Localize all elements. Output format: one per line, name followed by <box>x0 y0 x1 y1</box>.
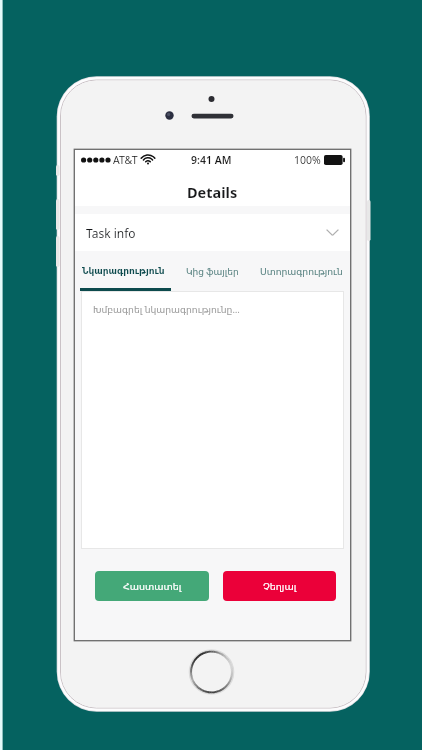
staticText: Նկարագրություն <box>82 266 165 276</box>
button[interactable]: Task info <box>75 214 350 251</box>
staticText: Ստորագրություն <box>260 266 343 277</box>
staticText: Խմբագրել նկարագրությունը… <box>93 303 240 316</box>
staticText: Task info <box>86 225 136 241</box>
staticText: Հաստատել <box>123 581 182 592</box>
button[interactable]: Չեղյալ <box>223 571 336 601</box>
staticText: 100% <box>294 153 321 167</box>
staticText: Details <box>187 182 238 202</box>
staticText: AT&T <box>113 153 138 167</box>
button[interactable]: Ստորագրություն <box>253 251 350 291</box>
staticText: Կից ֆայլեր <box>186 265 239 277</box>
button[interactable]: Հաստատել <box>95 571 209 601</box>
staticText: 9:41 AM <box>191 153 232 167</box>
staticText: Չեղյալ <box>263 581 297 592</box>
button[interactable]: Խմբագրել նկարագրությունը… <box>81 291 344 549</box>
button[interactable]: Կից ֆայլեր <box>171 251 253 291</box>
button[interactable]: Նկարագրություն <box>75 251 171 291</box>
